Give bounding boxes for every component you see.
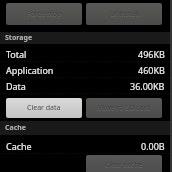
staticText: 36.00KB (130, 80, 165, 92)
staticText: Cache (5, 123, 27, 133)
button[interactable]: Move to SD card (86, 98, 162, 118)
button[interactable]: Uninstall (86, 3, 162, 25)
button[interactable]: Application (0, 62, 172, 78)
button[interactable]: Clear cache (86, 155, 162, 172)
staticText: Uninstall (110, 10, 139, 20)
button[interactable]: Clear data (6, 98, 82, 118)
staticText: 0.00B (141, 140, 165, 152)
button[interactable]: Total (0, 46, 172, 62)
button[interactable]: Data (0, 78, 172, 94)
staticText: Total (6, 48, 27, 60)
button[interactable]: Cache (0, 138, 172, 154)
staticText: Data (6, 80, 26, 92)
staticText: Clear cache (105, 160, 143, 170)
staticText: Application (6, 64, 54, 76)
staticText: Clear cache (105, 161, 143, 171)
staticText: 496KB (138, 48, 165, 60)
staticText: 460KB (138, 64, 165, 76)
staticText: Uninstall (110, 9, 139, 19)
staticText: Move to SD card (97, 104, 151, 114)
staticText: Storage (5, 33, 33, 43)
button[interactable]: Storage (0, 32, 172, 44)
button[interactable]: Cache (0, 121, 172, 135)
staticText: Force stop (27, 9, 62, 19)
button[interactable]: Force stop (6, 3, 82, 25)
staticText: Force stop (27, 10, 62, 20)
staticText: Move to SD card (97, 103, 151, 113)
staticText: Clear data (27, 103, 61, 113)
staticText: Cache (6, 140, 32, 152)
